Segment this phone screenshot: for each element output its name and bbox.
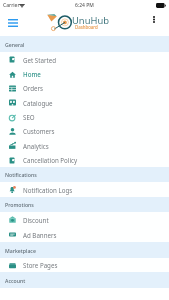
staticText: Notification Logs bbox=[23, 186, 73, 194]
button[interactable]: Notification Logs bbox=[0, 182, 169, 197]
button[interactable]: Home bbox=[0, 67, 169, 81]
button[interactable]: Analytics bbox=[0, 138, 169, 153]
button[interactable]: SEO bbox=[0, 110, 169, 124]
staticText: SEO bbox=[23, 113, 35, 121]
staticText: Marketplace bbox=[5, 247, 36, 254]
staticText: Promotions bbox=[5, 201, 34, 208]
staticText: Account bbox=[5, 277, 26, 284]
staticText: Ad Banners bbox=[23, 231, 57, 239]
staticText: Home bbox=[23, 70, 41, 78]
staticText: Cancellation Policy bbox=[23, 156, 78, 164]
button[interactable]: Orders bbox=[0, 81, 169, 95]
button[interactable]: Cancellation Policy bbox=[0, 153, 169, 167]
staticText: Store Pages bbox=[23, 261, 58, 269]
button[interactable]: Discount bbox=[0, 212, 169, 227]
button[interactable]: Store Pages bbox=[0, 258, 169, 272]
button[interactable]: Catalogue bbox=[0, 95, 169, 110]
staticText: Notifications bbox=[5, 171, 37, 178]
staticText: Catalogue bbox=[23, 99, 53, 107]
staticText: General bbox=[5, 41, 25, 48]
button[interactable]: Get Started bbox=[0, 52, 169, 67]
staticText: Discount bbox=[23, 216, 49, 224]
staticText: 6:24 PM bbox=[75, 2, 94, 9]
staticText: Dashboard bbox=[75, 24, 98, 30]
button[interactable]: Customers bbox=[0, 124, 169, 138]
staticText: Customers bbox=[23, 127, 55, 135]
staticText: Analytics bbox=[23, 142, 49, 150]
button[interactable]: Ad Banners bbox=[0, 227, 169, 242]
button[interactable]: More options bbox=[146, 14, 162, 36]
staticText: Orders bbox=[23, 84, 44, 92]
staticText: UnuHub bbox=[72, 14, 110, 27]
button[interactable]: Open navigation menu bbox=[4, 15, 22, 35]
staticText: Get Started bbox=[23, 56, 57, 64]
staticText: Carrier bbox=[3, 2, 20, 9]
